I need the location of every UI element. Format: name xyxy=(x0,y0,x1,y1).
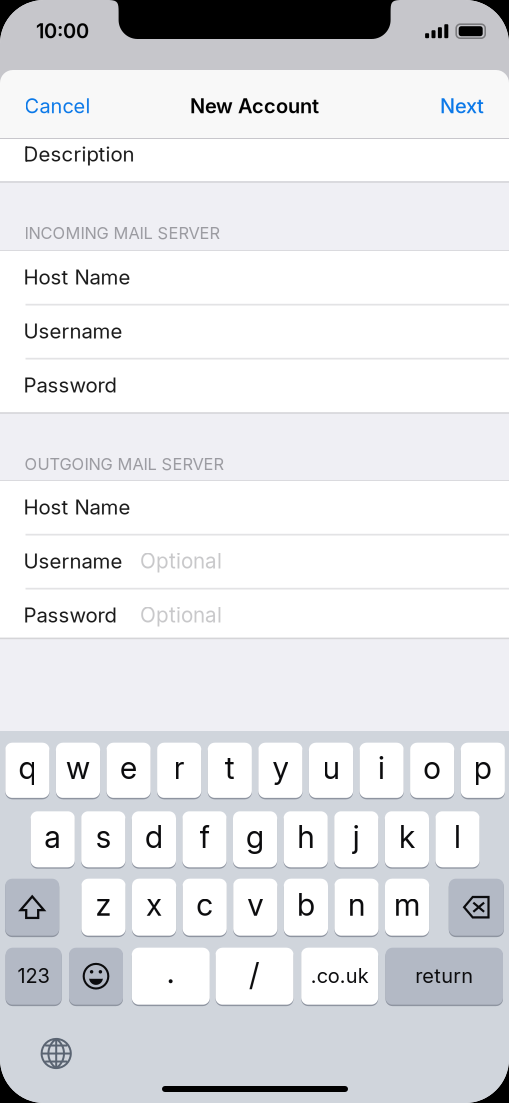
button[interactable]: b xyxy=(0,0,509,1103)
staticText: y xyxy=(272,749,288,786)
staticText: u xyxy=(322,749,339,786)
staticText: Password xyxy=(23,603,116,627)
button[interactable]: q xyxy=(0,0,509,1103)
button[interactable]: t xyxy=(0,0,509,1103)
button[interactable]: Username xyxy=(23,304,509,358)
staticText: return xyxy=(415,964,473,988)
staticText: New Account xyxy=(190,94,319,118)
button[interactable]: h xyxy=(0,0,509,1103)
button[interactable]: a xyxy=(0,0,509,1103)
staticText: .co.uk xyxy=(311,964,369,988)
staticText: Host Name xyxy=(23,265,130,289)
button[interactable]: x xyxy=(0,0,509,1103)
button[interactable]: u xyxy=(0,0,509,1103)
staticText: d xyxy=(145,818,163,855)
staticText: v xyxy=(247,886,263,923)
staticText: l xyxy=(454,818,461,855)
button[interactable]: v xyxy=(0,0,509,1103)
staticText: OUTGOING MAIL SERVER xyxy=(24,454,224,474)
staticText: INCOMING MAIL SERVER xyxy=(24,223,220,243)
button[interactable]: k xyxy=(0,0,509,1103)
button[interactable]: i xyxy=(0,0,509,1103)
button[interactable]: r xyxy=(0,0,509,1103)
button[interactable]: / xyxy=(0,0,509,1103)
staticText: j xyxy=(353,818,360,855)
staticText: x xyxy=(146,886,162,923)
button[interactable]: z xyxy=(0,0,509,1103)
button[interactable]: Password xyxy=(23,358,509,412)
staticText: w xyxy=(66,749,90,786)
button[interactable]: p xyxy=(0,0,509,1103)
staticText: f xyxy=(199,818,209,855)
button[interactable]: Password xyxy=(23,588,509,642)
button[interactable]: Host Name xyxy=(23,250,509,304)
button[interactable]: d xyxy=(0,0,509,1103)
staticText: n xyxy=(348,886,365,923)
staticText: / xyxy=(249,957,260,994)
button[interactable]: Host Name xyxy=(23,480,509,534)
button[interactable]: f xyxy=(0,0,509,1103)
staticText: Optional xyxy=(140,548,222,573)
staticText: z xyxy=(95,886,111,923)
button[interactable]: s xyxy=(0,0,509,1103)
staticText: a xyxy=(44,818,61,855)
staticText: p xyxy=(474,749,492,786)
staticText: g xyxy=(246,818,264,855)
staticText: Password xyxy=(23,373,116,397)
button[interactable]: j xyxy=(0,0,509,1103)
button[interactable]: m xyxy=(0,0,509,1103)
staticText: t xyxy=(225,749,235,786)
staticText: h xyxy=(297,818,314,855)
staticText: Username xyxy=(23,549,122,573)
button[interactable]: Username xyxy=(23,534,509,588)
staticText: e xyxy=(120,749,137,786)
staticText: o xyxy=(423,749,441,786)
button[interactable]: e xyxy=(0,0,509,1103)
button[interactable]: return xyxy=(0,0,509,1103)
button[interactable]: g xyxy=(0,0,509,1103)
staticText: Cancel xyxy=(24,94,90,118)
button[interactable]: y xyxy=(0,0,509,1103)
button[interactable]: Shift xyxy=(0,0,509,1103)
staticText: Next xyxy=(440,94,484,118)
button[interactable]: Description xyxy=(23,127,509,181)
button[interactable]: Delete xyxy=(0,0,509,1103)
button[interactable]: Emoji xyxy=(0,0,509,1103)
staticText: i xyxy=(378,749,385,786)
staticText: Description xyxy=(23,142,134,166)
button[interactable]: c xyxy=(0,0,509,1103)
button[interactable]: n xyxy=(0,0,509,1103)
staticText: m xyxy=(394,886,420,923)
staticText: Optional xyxy=(140,602,222,627)
staticText: 123 xyxy=(18,964,50,988)
staticText: q xyxy=(18,749,36,786)
button[interactable]: l xyxy=(0,0,509,1103)
staticText: k xyxy=(399,818,415,855)
staticText: c xyxy=(196,886,213,923)
button[interactable]: Cancel xyxy=(0,80,130,132)
staticText: s xyxy=(96,818,111,855)
staticText: Username xyxy=(23,319,122,343)
button[interactable]: .co.uk xyxy=(0,0,509,1103)
button[interactable]: Next keyboard xyxy=(40,1037,72,1069)
button[interactable]: . xyxy=(0,0,509,1103)
staticText: b xyxy=(297,886,315,923)
button[interactable]: Next xyxy=(379,80,509,132)
staticText: 10:00 xyxy=(36,19,89,43)
staticText: r xyxy=(174,749,185,786)
button[interactable]: 123 xyxy=(0,0,509,1103)
button[interactable]: w xyxy=(0,0,509,1103)
staticText: . xyxy=(167,954,175,991)
button[interactable]: o xyxy=(0,0,509,1103)
staticText: Host Name xyxy=(23,495,130,519)
